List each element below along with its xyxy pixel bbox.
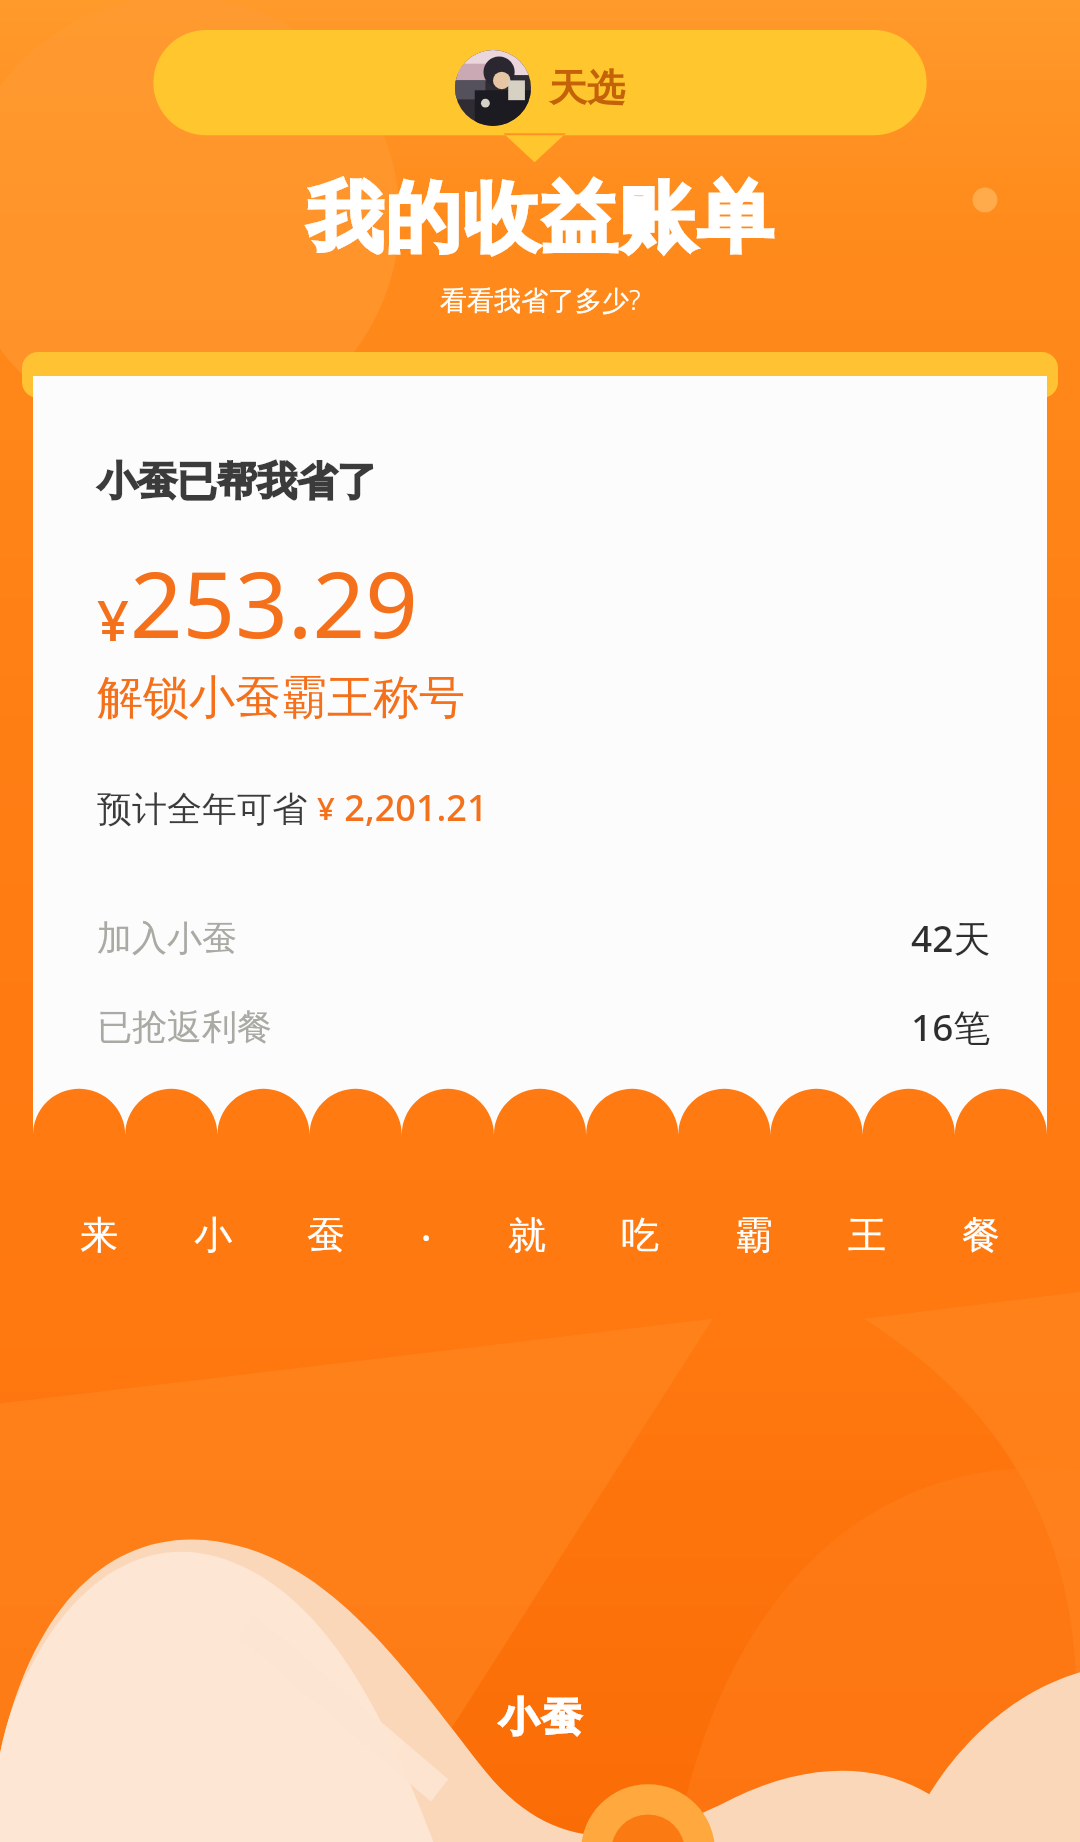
staticText: 蚕	[307, 1211, 345, 1259]
staticText: 253.29	[130, 540, 418, 665]
staticText: 来	[80, 1211, 118, 1259]
staticText: 天选	[549, 64, 625, 112]
button[interactable]: User avatar	[443, 44, 637, 132]
staticText: 吃	[621, 1211, 659, 1259]
button[interactable]: 已抢返利餐	[97, 995, 991, 1058]
button[interactable]: 小蚕已帮我省了	[33, 376, 1047, 1181]
staticText: 16笔	[911, 1001, 991, 1052]
staticText: 2,201.21	[335, 783, 488, 832]
staticText: 预计全年可省	[97, 784, 317, 832]
staticText: 霸	[735, 1211, 773, 1259]
staticText: 已抢返利餐	[97, 1005, 272, 1049]
staticText: ¥	[317, 787, 335, 829]
staticText: 王	[848, 1211, 886, 1259]
staticText: ·	[421, 1211, 432, 1263]
staticText: 小蚕已帮我省了	[97, 456, 377, 506]
other: User avatar	[455, 50, 531, 126]
staticText: 加入小蚕	[97, 916, 237, 960]
staticText: ¥	[97, 581, 130, 657]
staticText: 餐	[962, 1211, 1000, 1259]
staticText: 看看我省了多少?	[440, 281, 641, 318]
staticText: 解锁小蚕霸王称号	[97, 669, 465, 727]
staticText: 小蚕	[497, 1692, 583, 1742]
staticText: 42天	[911, 912, 991, 963]
staticText: 小	[194, 1211, 232, 1259]
staticText: 我的收益账单	[306, 171, 774, 267]
button[interactable]: 加入小蚕	[97, 906, 991, 969]
staticText: 就	[508, 1211, 546, 1259]
